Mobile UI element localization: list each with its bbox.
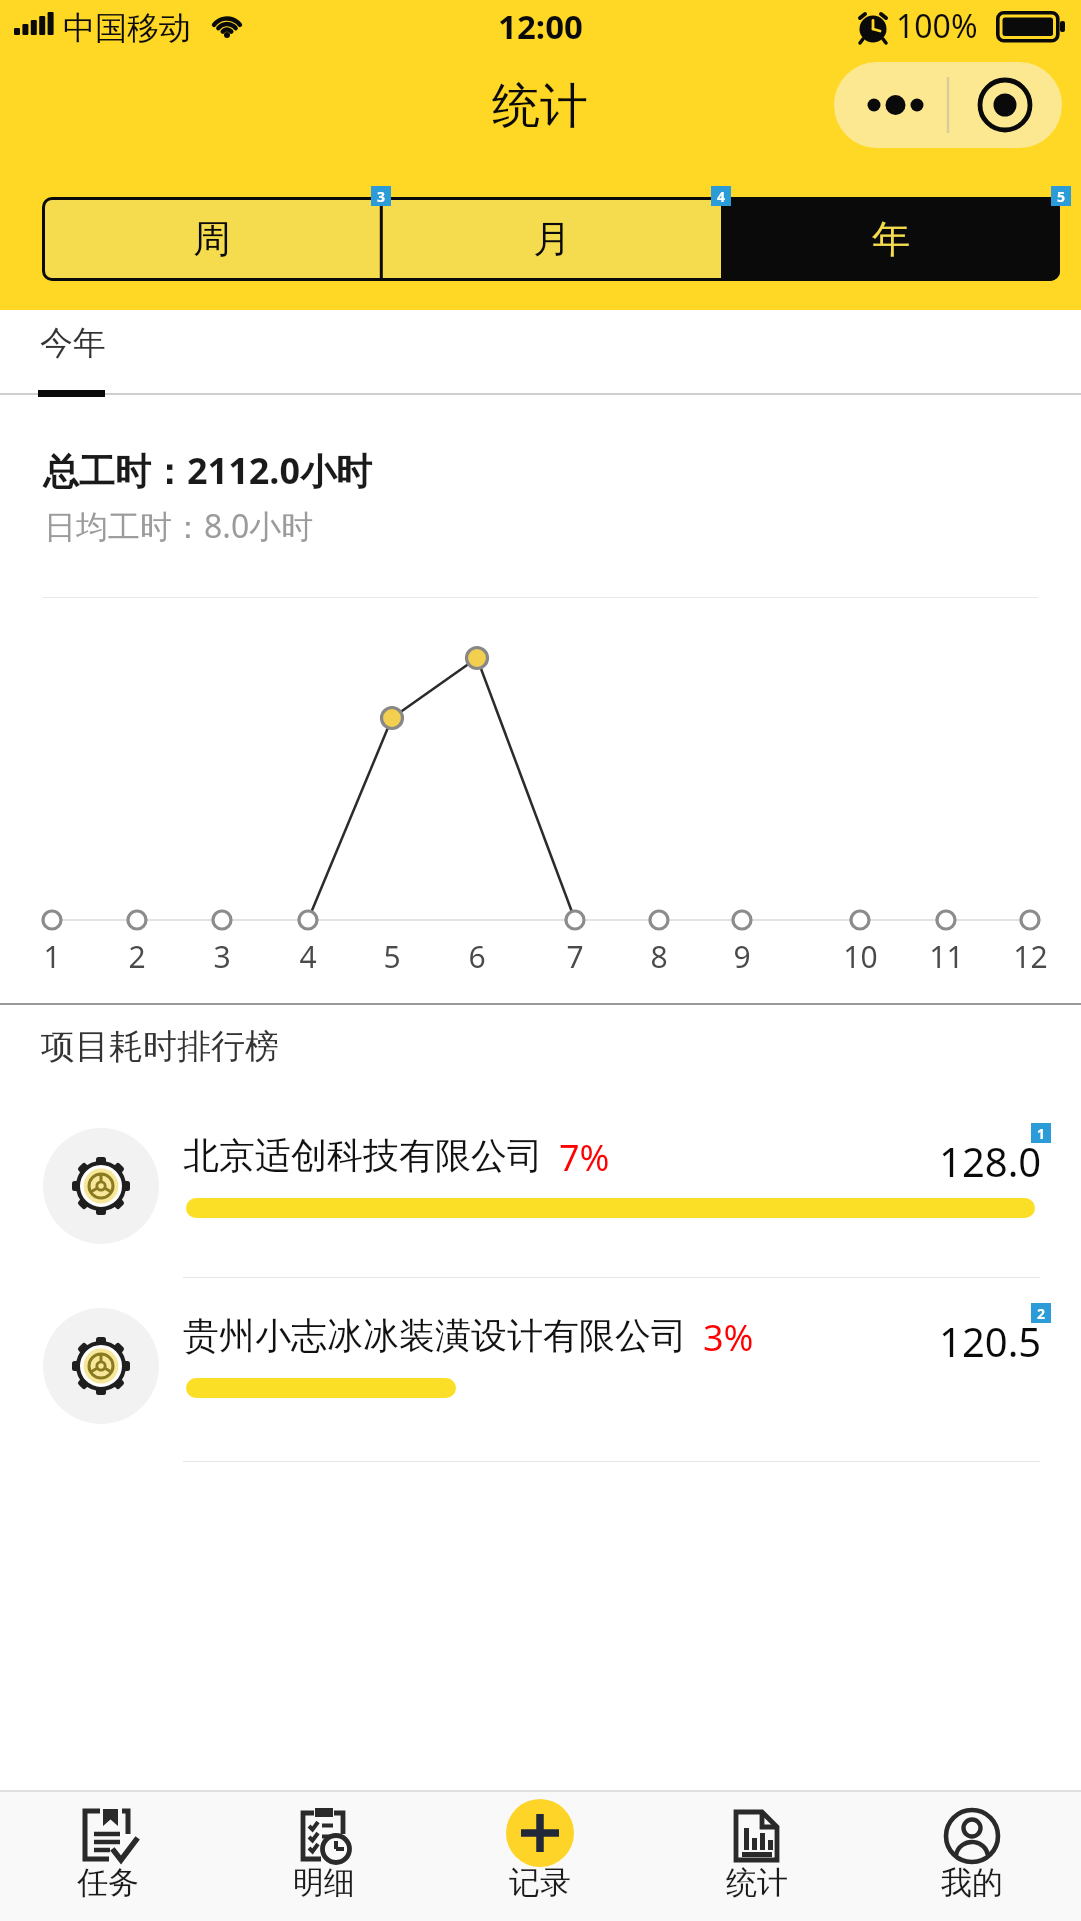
staticText: 12:00 (498, 4, 583, 49)
staticText: 1 (1037, 1124, 1046, 1143)
button[interactable]: 周 (42, 197, 382, 281)
staticText: 贵州小志冰冰装潢设计有限公司 (183, 1313, 687, 1358)
button[interactable]: 月 (382, 197, 721, 281)
staticText: 我的 (941, 1863, 1003, 1902)
staticText: 中国移动 (63, 8, 191, 48)
staticText: 10 (843, 936, 878, 977)
staticText: 统计 (726, 1863, 788, 1902)
staticText: 3 (213, 936, 231, 977)
button[interactable] (244, 1795, 404, 1915)
staticText: 年 (872, 215, 910, 263)
button[interactable] (43, 1308, 159, 1424)
staticText: 任务 (77, 1863, 139, 1902)
button[interactable]: 年 (721, 197, 1060, 281)
staticText: 项目耗时排行榜 (41, 1025, 279, 1068)
staticText: 5 (383, 936, 401, 977)
button[interactable] (506, 1799, 574, 1867)
button[interactable] (834, 62, 1062, 148)
staticText: 12 (1013, 936, 1048, 977)
staticText: 2 (128, 936, 146, 977)
staticText: 7 (566, 936, 584, 977)
staticText: 明细 (293, 1863, 355, 1902)
staticText: 记录 (509, 1863, 571, 1902)
staticText: 2 (1037, 1304, 1046, 1323)
staticText: 日均工时：8.0小时 (44, 504, 314, 548)
staticText: 3% (703, 1313, 754, 1362)
staticText: 120.5 (939, 1314, 1042, 1368)
staticText: 100% (896, 4, 978, 48)
staticText: 8 (650, 936, 668, 977)
staticText: 4 (299, 936, 317, 977)
staticText: 北京适创科技有限公司 (183, 1133, 543, 1178)
button[interactable] (892, 1795, 1052, 1915)
staticText: 月 (533, 215, 571, 263)
staticText: 周 (193, 215, 231, 263)
button[interactable] (28, 1795, 188, 1915)
staticText: 5 (1057, 187, 1066, 206)
staticText: 总工时：2112.0小时 (43, 446, 373, 495)
staticText: 今年 (40, 322, 106, 364)
staticText: 128.0 (939, 1134, 1042, 1188)
staticText: 9 (733, 936, 751, 977)
button[interactable] (677, 1795, 837, 1915)
staticText: 统计 (492, 76, 588, 136)
staticText: 1 (43, 936, 61, 977)
staticText: 11 (929, 936, 964, 977)
staticText: 6 (468, 936, 486, 977)
staticText: 3 (377, 187, 386, 206)
staticText: 7% (559, 1133, 610, 1182)
staticText: 4 (717, 187, 726, 206)
button[interactable] (43, 1128, 159, 1244)
